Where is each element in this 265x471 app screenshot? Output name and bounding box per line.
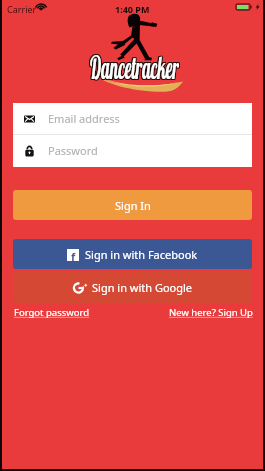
button[interactable]: Sign In bbox=[13, 190, 252, 220]
staticText: Dancetracker bbox=[90, 47, 180, 86]
button[interactable]: Password bbox=[13, 135, 252, 166]
staticText: Dancetracker bbox=[90, 49, 179, 88]
staticText: Dancetracker bbox=[88, 47, 178, 86]
staticText: 1:40 PM bbox=[115, 3, 150, 15]
staticText: Email address bbox=[48, 111, 120, 126]
staticText: Sign in with Google bbox=[92, 280, 193, 295]
staticText: Sign in with Facebook bbox=[85, 247, 198, 262]
button[interactable]: f bbox=[13, 239, 252, 269]
staticText: Sign In bbox=[115, 198, 151, 213]
staticText: Dancetracker bbox=[89, 48, 179, 87]
staticText: Dancetracker bbox=[89, 47, 179, 86]
button[interactable]: Email bbox=[13, 103, 252, 134]
staticText: Dancetracker bbox=[88, 48, 178, 87]
staticText: Dancetracker bbox=[90, 47, 179, 86]
other: Password bbox=[24, 145, 35, 157]
staticText: Forgot password bbox=[14, 306, 90, 319]
staticText: Password bbox=[48, 143, 98, 158]
staticText: Dancetracker bbox=[89, 47, 178, 86]
staticText: Dancetracker bbox=[88, 49, 178, 88]
button[interactable]: Forgot password bbox=[14, 306, 90, 319]
staticText: Dancetracker bbox=[89, 49, 178, 88]
button[interactable]: Sign in with Google bbox=[13, 272, 252, 303]
other: Wi-Fi bbox=[37, 3, 45, 10]
staticText: Dancetracker bbox=[90, 48, 179, 87]
other: Battery bbox=[236, 4, 262, 10]
staticText: Dancetracker bbox=[90, 48, 180, 87]
staticText: f bbox=[71, 249, 76, 261]
button[interactable]: New here? Sign Up bbox=[169, 306, 253, 319]
other: Email bbox=[24, 113, 35, 125]
staticText: Carrier bbox=[7, 3, 37, 15]
staticText: New here? Sign Up bbox=[169, 306, 253, 319]
staticText: Dancetracker bbox=[90, 49, 180, 88]
staticText: Dancetracker bbox=[89, 48, 178, 87]
staticText: Dancetracker bbox=[89, 49, 179, 88]
